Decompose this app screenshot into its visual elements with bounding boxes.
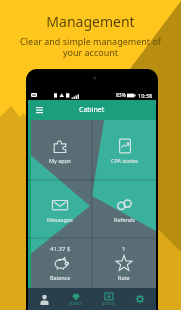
button[interactable]: 41.37 $ <box>28 238 92 288</box>
button[interactable]: CPA states <box>92 120 156 180</box>
button[interactable]: 1 <box>92 238 156 288</box>
button[interactable]: Settings <box>124 288 156 310</box>
staticText: 41.37 $ <box>50 245 71 253</box>
button[interactable]: My apps <box>28 120 92 180</box>
staticText: Messages <box>47 216 73 223</box>
staticText: 1 <box>122 245 126 253</box>
button[interactable]: Retails <box>60 288 92 310</box>
button[interactable]: Referals <box>92 180 156 238</box>
staticText: 10:38 <box>138 92 153 99</box>
staticText: Referals <box>114 216 135 223</box>
staticText: Management <box>46 12 135 31</box>
button[interactable]: Profile <box>28 288 60 310</box>
staticText: Balance <box>50 274 71 281</box>
button[interactable]: Menu <box>36 107 43 113</box>
staticText: RETAILS <box>69 301 83 306</box>
staticText: ACTION <box>102 301 115 306</box>
staticText: My apps <box>49 157 71 164</box>
button[interactable]: Action <box>92 288 124 310</box>
staticText: Cabinet <box>79 105 105 115</box>
staticText: 83% <box>116 92 126 99</box>
button[interactable]: Messages <box>28 180 92 238</box>
staticText: Rate <box>118 274 130 281</box>
staticText: Clear and simple management of your acco… <box>20 35 161 59</box>
staticText: CPA states <box>111 157 138 164</box>
